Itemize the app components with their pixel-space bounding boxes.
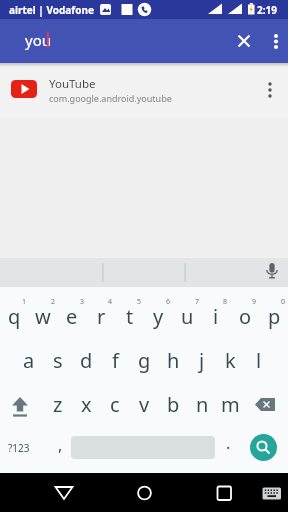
staticText: f — [112, 347, 119, 374]
staticText: . — [226, 432, 231, 454]
button[interactable] — [208, 477, 240, 509]
staticText: a — [23, 347, 35, 374]
staticText: d — [80, 347, 93, 374]
staticText: v — [139, 391, 150, 418]
button[interactable]: m — [216, 383, 244, 426]
staticText: i — [213, 303, 219, 330]
staticText: s — [53, 347, 63, 374]
button[interactable]: p — [260, 295, 288, 338]
button[interactable]: s — [44, 339, 72, 382]
staticText: e — [66, 303, 78, 330]
button[interactable]: e — [58, 295, 86, 338]
button[interactable]: l — [245, 339, 273, 382]
button[interactable]: a — [15, 339, 43, 382]
staticText: 3 — [80, 297, 85, 307]
button[interactable]: g — [130, 339, 158, 382]
staticText: z — [53, 391, 63, 418]
button[interactable]: k — [216, 339, 244, 382]
staticText: 1 — [22, 297, 27, 307]
staticText: q — [8, 303, 21, 330]
staticText: 7 — [195, 297, 200, 307]
button[interactable]: f — [101, 339, 129, 382]
staticText: 8 — [223, 297, 228, 307]
button[interactable]: o — [231, 295, 259, 338]
button[interactable]: n — [188, 383, 216, 426]
button[interactable]: c — [101, 383, 129, 426]
staticText: u — [181, 303, 194, 330]
button[interactable]: y — [144, 295, 172, 338]
button[interactable]: x — [72, 383, 100, 426]
staticText: m — [221, 391, 240, 418]
staticText: 2 — [51, 297, 56, 307]
button[interactable] — [258, 258, 288, 287]
staticText: k — [225, 347, 236, 374]
staticText: x — [81, 391, 92, 418]
staticText: 0 — [281, 297, 286, 307]
staticText: , — [58, 434, 63, 456]
button[interactable] — [48, 477, 80, 509]
staticText: l — [256, 347, 262, 374]
button[interactable]: . — [214, 421, 242, 464]
staticText: com.google.android.youtube — [49, 92, 172, 104]
staticText: g — [138, 347, 151, 374]
button[interactable]: q — [0, 295, 28, 338]
staticText: h — [167, 347, 180, 374]
staticText: r — [97, 303, 106, 330]
staticText: ?123 — [8, 441, 30, 455]
staticText: 5 — [137, 297, 142, 307]
staticText: t — [126, 303, 134, 330]
staticText: n — [196, 391, 209, 418]
button[interactable]: i — [202, 295, 230, 338]
staticText: you — [25, 30, 51, 50]
button[interactable] — [228, 25, 260, 57]
staticText: 4 — [108, 297, 113, 307]
button[interactable]: t — [116, 295, 144, 338]
button[interactable]: v — [130, 383, 158, 426]
button[interactable] — [250, 434, 277, 461]
button[interactable]: w — [29, 295, 57, 338]
button[interactable]: d — [72, 339, 100, 382]
staticText: 9 — [252, 297, 257, 307]
staticText: y — [153, 303, 164, 330]
staticText: b — [167, 391, 180, 418]
button[interactable] — [256, 477, 286, 507]
button[interactable]: b — [159, 383, 187, 426]
staticText: YouTube — [49, 76, 96, 92]
button[interactable]: r — [87, 295, 115, 338]
button[interactable]: YouTube — [0, 63, 288, 118]
staticText: airtel | Vodafone — [9, 3, 94, 17]
staticText: w — [35, 303, 51, 330]
button[interactable]: , — [46, 423, 74, 466]
staticText: 6 — [166, 297, 171, 307]
button[interactable]: u — [173, 295, 201, 338]
staticText: c — [110, 391, 120, 418]
staticText: o — [239, 303, 252, 330]
button[interactable]: h — [159, 339, 187, 382]
button[interactable]: z — [44, 383, 72, 426]
button[interactable]: j — [188, 339, 216, 382]
staticText: 2:19 — [257, 3, 277, 17]
staticText: j — [199, 347, 205, 374]
button[interactable] — [262, 25, 288, 51]
button[interactable] — [128, 477, 160, 509]
staticText: p — [268, 303, 281, 330]
